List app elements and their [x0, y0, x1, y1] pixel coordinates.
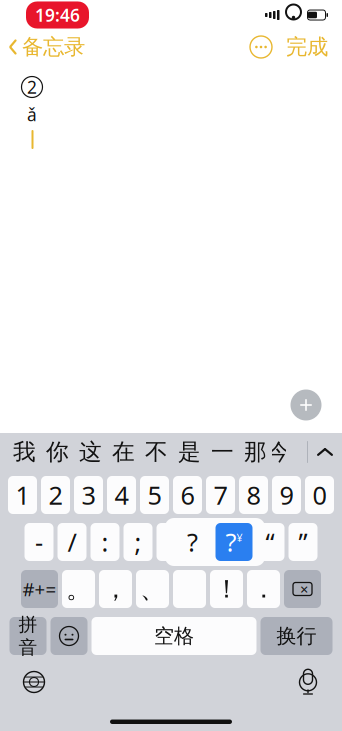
staticText: 不 — [145, 438, 168, 466]
staticText: 2 — [27, 75, 37, 98]
staticText: ． — [251, 573, 276, 604]
button[interactable]: ” — [288, 523, 317, 561]
button[interactable]: ? — [222, 523, 251, 561]
button[interactable]: ， — [99, 570, 132, 608]
staticText: 拼音 — [18, 613, 37, 659]
button[interactable]: 、 — [136, 570, 169, 608]
button[interactable]: ( — [156, 523, 185, 561]
button[interactable]: “ — [255, 523, 284, 561]
button[interactable]: 8 — [239, 476, 268, 514]
button[interactable]: 一 — [206, 433, 239, 471]
button[interactable]: ！ — [210, 570, 243, 608]
staticText: 。 — [66, 573, 91, 604]
staticText: 0 — [312, 478, 326, 512]
staticText: 6 — [180, 478, 194, 512]
button[interactable]: 表情 — [50, 617, 87, 655]
button[interactable]: / — [57, 523, 86, 561]
button[interactable]: 7 — [206, 476, 235, 514]
button[interactable]: - — [24, 523, 53, 561]
staticText: 是 — [178, 438, 201, 466]
staticText: - — [35, 525, 43, 559]
staticText: ǎ — [27, 103, 37, 126]
staticText: 这 — [79, 438, 102, 466]
staticText: 4 — [114, 478, 128, 512]
button[interactable]: 0 — [305, 476, 334, 514]
button[interactable]: 今 — [272, 433, 286, 471]
button[interactable]: 5 — [140, 476, 169, 514]
staticText: 8 — [246, 478, 260, 512]
button[interactable]: 你 — [41, 433, 74, 471]
staticText: 换行 — [276, 624, 316, 648]
staticText: 一 — [211, 438, 234, 466]
staticText: “ — [265, 525, 274, 559]
button[interactable]: 4 — [107, 476, 136, 514]
staticText: 1 — [15, 478, 29, 512]
staticText: 今 — [267, 438, 290, 466]
staticText: 7 — [213, 478, 227, 512]
button[interactable]: 1 — [8, 476, 37, 514]
button[interactable]: 这 — [74, 433, 107, 471]
button[interactable]: 添加 — [286, 385, 326, 425]
button[interactable]: 拼音 — [9, 617, 46, 655]
staticText: 你 — [46, 438, 69, 466]
staticText: / — [67, 525, 76, 559]
staticText: ? — [231, 525, 242, 559]
staticText: 9 — [279, 478, 293, 512]
button[interactable]: #+= — [21, 570, 58, 608]
button[interactable]: 更多 — [246, 32, 276, 62]
staticText: : — [101, 525, 108, 559]
staticText: 那 — [244, 438, 267, 466]
staticText: 3 — [81, 478, 95, 512]
button[interactable]: 在 — [107, 433, 140, 471]
button[interactable]: 切换键盘 — [14, 665, 54, 699]
staticText: 5 — [147, 478, 161, 512]
staticText: ; — [134, 525, 141, 559]
staticText: ， — [103, 573, 128, 604]
button[interactable]: 换行 — [260, 617, 332, 655]
button[interactable]: 备忘录 — [0, 28, 85, 66]
staticText: 19:46 — [35, 3, 80, 26]
staticText: ? — [225, 525, 236, 559]
button[interactable]: 收起候选 — [308, 433, 342, 471]
button[interactable]: 9 — [272, 476, 301, 514]
button[interactable]: 语音输入 — [288, 665, 328, 699]
button[interactable]: 删除 — [284, 570, 321, 608]
staticText: 在 — [112, 438, 135, 466]
staticText: 、 — [140, 573, 165, 604]
button[interactable]: 空格 — [91, 617, 256, 655]
staticText: 备忘录 — [22, 34, 85, 60]
button[interactable]: 完成 — [286, 28, 342, 66]
staticText: 完成 — [286, 34, 328, 60]
button[interactable]: 是 — [173, 433, 206, 471]
button[interactable]: 不 — [140, 433, 173, 471]
button[interactable]: 。 — [62, 570, 95, 608]
button[interactable]: 2 — [41, 476, 70, 514]
button[interactable]: ? — [189, 523, 218, 561]
button[interactable]: 我 — [8, 433, 41, 471]
staticText: ” — [298, 525, 307, 559]
staticText: 我 — [13, 438, 36, 466]
staticText: ！ — [214, 573, 239, 604]
button[interactable]: ． — [247, 570, 280, 608]
staticText: 空格 — [154, 624, 194, 648]
button[interactable]: ; — [123, 523, 152, 561]
button[interactable]: 3 — [74, 476, 103, 514]
button[interactable]: 那 — [239, 433, 272, 471]
button[interactable]: : — [90, 523, 119, 561]
staticText: × — [300, 579, 308, 599]
staticText: #+= — [22, 577, 56, 601]
staticText: ? — [187, 525, 198, 559]
staticText: 2 — [48, 478, 62, 512]
button[interactable]: 6 — [173, 476, 202, 514]
button[interactable] — [173, 570, 206, 608]
staticText: ¥ — [236, 530, 242, 545]
